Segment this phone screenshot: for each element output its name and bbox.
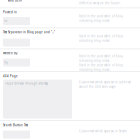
button[interactable]: Add Item — [6, 0, 24, 4]
staticText: Posted in — [3, 10, 17, 14]
staticText: including blog index — [79, 59, 109, 62]
staticText: Search Button Text — [3, 123, 28, 127]
staticText: by — [5, 61, 8, 64]
staticText: Written By — [3, 51, 17, 55]
staticText: Used in the post table of blog — [79, 14, 123, 18]
staticText: different areas on the footer. — [79, 1, 121, 5]
staticText: in — [5, 19, 8, 23]
staticText: including blog index — [79, 68, 109, 71]
staticText: Used in the post table of blog — [79, 34, 123, 38]
staticText: including blog index — [79, 19, 109, 22]
staticText: including blog index — [79, 39, 109, 42]
staticText: Custom text which appears in subhead — [79, 80, 131, 84]
staticText: Add Item — [8, 0, 22, 2]
staticText: Used in the post table of blog — [79, 63, 123, 67]
staticText: Custom text which appears in Search — [79, 129, 127, 133]
staticText: 404 Page — [3, 74, 18, 78]
staticText: Oops! Browse through sitemap — [5, 82, 48, 85]
staticText: Text Separator in Blog page and “…” — [3, 30, 55, 34]
staticText: Used in the post table of blog — [79, 54, 123, 58]
staticText: area of the 404 Error page — [79, 85, 116, 88]
